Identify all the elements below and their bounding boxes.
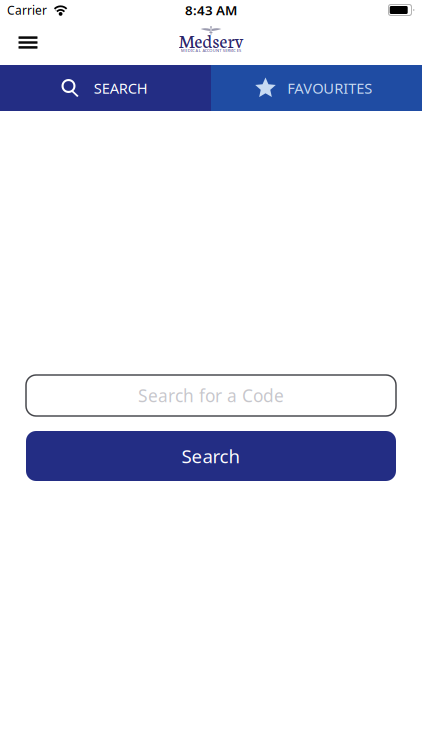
staticText: 8:43 AM <box>185 1 237 19</box>
staticText: SEARCH <box>94 78 148 98</box>
button[interactable]: Menu <box>0 20 56 65</box>
staticText: FAVOURITES <box>287 78 372 98</box>
staticText: Search <box>181 444 240 468</box>
button[interactable]: Search <box>26 431 396 481</box>
staticText: MEDICAL ACCOUNT SERVICES <box>181 48 241 53</box>
button[interactable]: FAVOURITES <box>211 65 422 111</box>
button[interactable]: SEARCH <box>0 65 211 111</box>
staticText: Search for a Code <box>138 384 284 407</box>
staticText: Medserv <box>178 27 243 53</box>
staticText: Carrier <box>7 2 47 18</box>
